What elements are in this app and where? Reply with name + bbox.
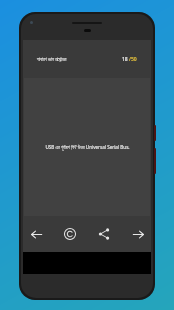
staticText: 18 /50 [122,56,137,63]
staticText: USB এর পূর্ণরূপ কি? উত্তর Universal Seri… [45,144,130,150]
button[interactable]: USB এর পূর্ণরূপ কি? উত্তর Universal Seri… [24,78,150,216]
button[interactable]: Share [93,223,115,245]
button[interactable]: Copy [59,223,81,245]
button[interactable]: Previous [25,223,47,245]
button[interactable]: Next [127,223,149,245]
staticText: সাধারণ জ্ঞান প্রশ্নোত্তর [37,56,67,62]
